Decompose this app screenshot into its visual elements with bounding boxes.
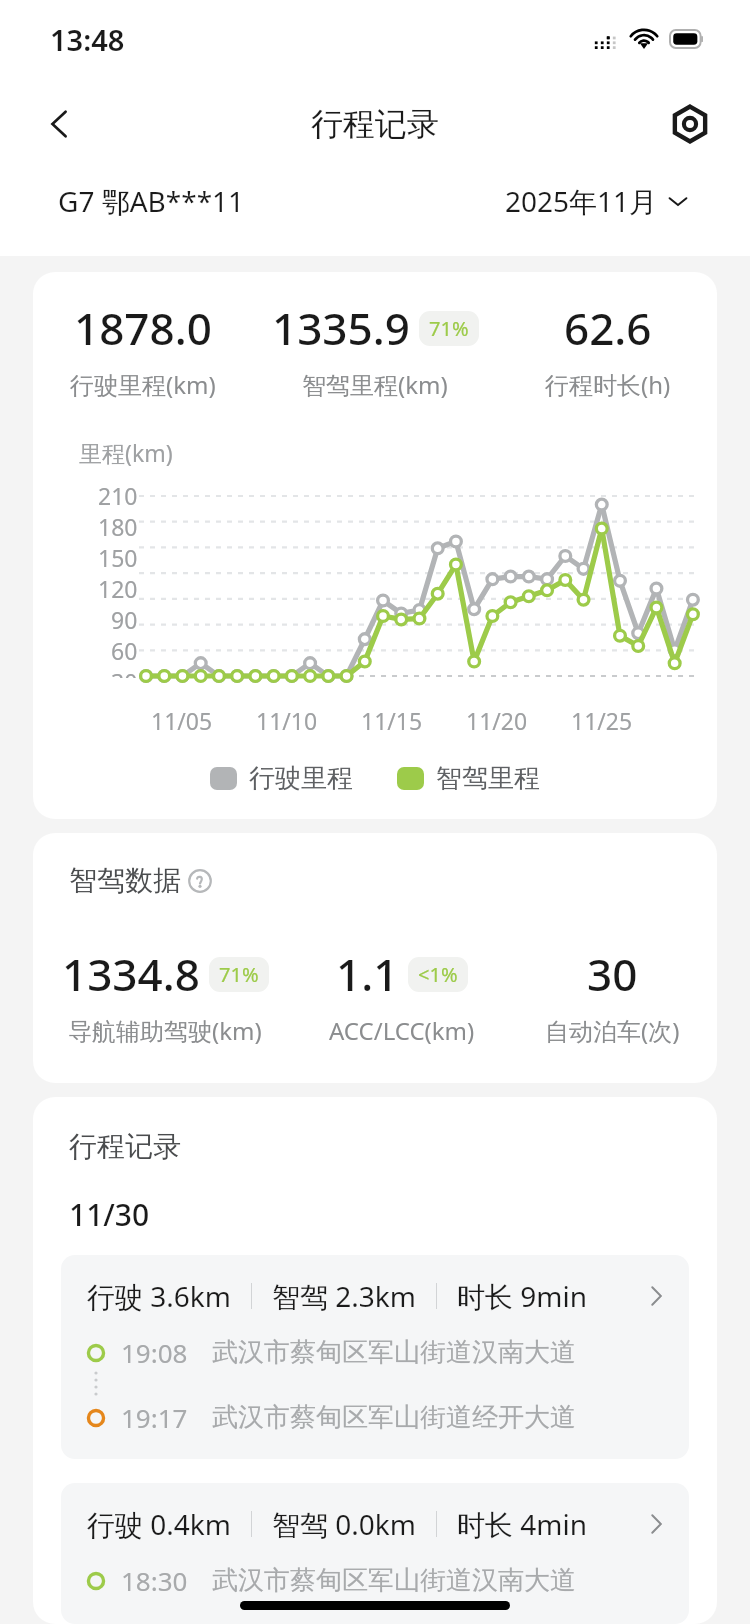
staticText: 11/15 — [361, 705, 423, 736]
staticText: 150 — [98, 542, 138, 573]
staticText: 2025年11月 — [505, 182, 658, 220]
staticText: 11/05 — [151, 705, 213, 736]
staticText: 智驾数据 — [69, 863, 181, 898]
staticText: 行程时长(h) — [545, 368, 671, 401]
staticText: 1334.8 — [62, 944, 200, 1004]
button[interactable]: Settings — [658, 92, 722, 156]
staticText: 行驶里程(km) — [70, 368, 216, 401]
staticText: 武汉市蔡甸区军山街道经开大道 — [212, 1401, 576, 1434]
staticText: 时长 4min — [457, 1505, 588, 1543]
button[interactable]: 2025年11月 — [501, 178, 692, 224]
staticText: 智驾 0.0km — [272, 1505, 416, 1543]
staticText: 30 — [111, 666, 138, 678]
staticText: 1.1 — [336, 944, 399, 1004]
staticText: 智驾里程(km) — [302, 368, 448, 401]
staticText: 自动泊车(次) — [545, 1014, 680, 1047]
staticText: 武汉市蔡甸区军山街道汉南大道 — [212, 1336, 576, 1369]
staticText: 里程(km) — [79, 437, 173, 468]
staticText: 导航辅助驾驶(km) — [68, 1014, 262, 1047]
button[interactable]: 行驶 3.6km — [61, 1255, 689, 1459]
button[interactable]: Help — [187, 868, 213, 894]
staticText: ACC/LCC(km) — [329, 1014, 475, 1047]
staticText: 武汉市蔡甸区军山街道汉南大道 — [212, 1564, 576, 1597]
staticText: 30 — [587, 944, 638, 1004]
staticText: 71% — [219, 961, 259, 988]
staticText: 11/30 — [69, 1194, 150, 1235]
staticText: 11/20 — [466, 705, 528, 736]
staticText: 1878.0 — [74, 298, 212, 358]
staticText: 60 — [111, 635, 138, 666]
staticText: 智驾 2.3km — [272, 1277, 416, 1315]
staticText: 13:48 — [50, 20, 125, 59]
staticText: <1% — [418, 961, 458, 988]
staticText: 19:17 — [121, 1400, 188, 1435]
staticText: 71% — [429, 315, 469, 342]
staticText: 行程记录 — [311, 104, 439, 144]
button[interactable]: Back — [28, 92, 92, 156]
staticText: 时长 9min — [457, 1277, 588, 1315]
staticText: 180 — [98, 511, 138, 542]
staticText: 11/25 — [571, 705, 633, 736]
staticText: 90 — [111, 604, 138, 635]
staticText: 行驶 0.4km — [87, 1505, 231, 1543]
staticText: 1335.9 — [272, 298, 410, 358]
button[interactable]: 行驶 0.4km — [61, 1483, 689, 1624]
staticText: 行程记录 — [69, 1129, 181, 1164]
staticText: 11/10 — [256, 705, 318, 736]
staticText: 行驶 3.6km — [87, 1277, 231, 1315]
staticText: 18:30 — [121, 1563, 188, 1598]
staticText: 智驾里程 — [436, 762, 540, 795]
staticText: 19:08 — [121, 1335, 188, 1370]
staticText: 120 — [98, 573, 138, 604]
staticText: G7 鄂AB***11 — [58, 182, 245, 220]
staticText: 62.6 — [564, 298, 652, 358]
staticText: 210 — [98, 480, 138, 511]
staticText: 行驶里程 — [249, 762, 353, 795]
